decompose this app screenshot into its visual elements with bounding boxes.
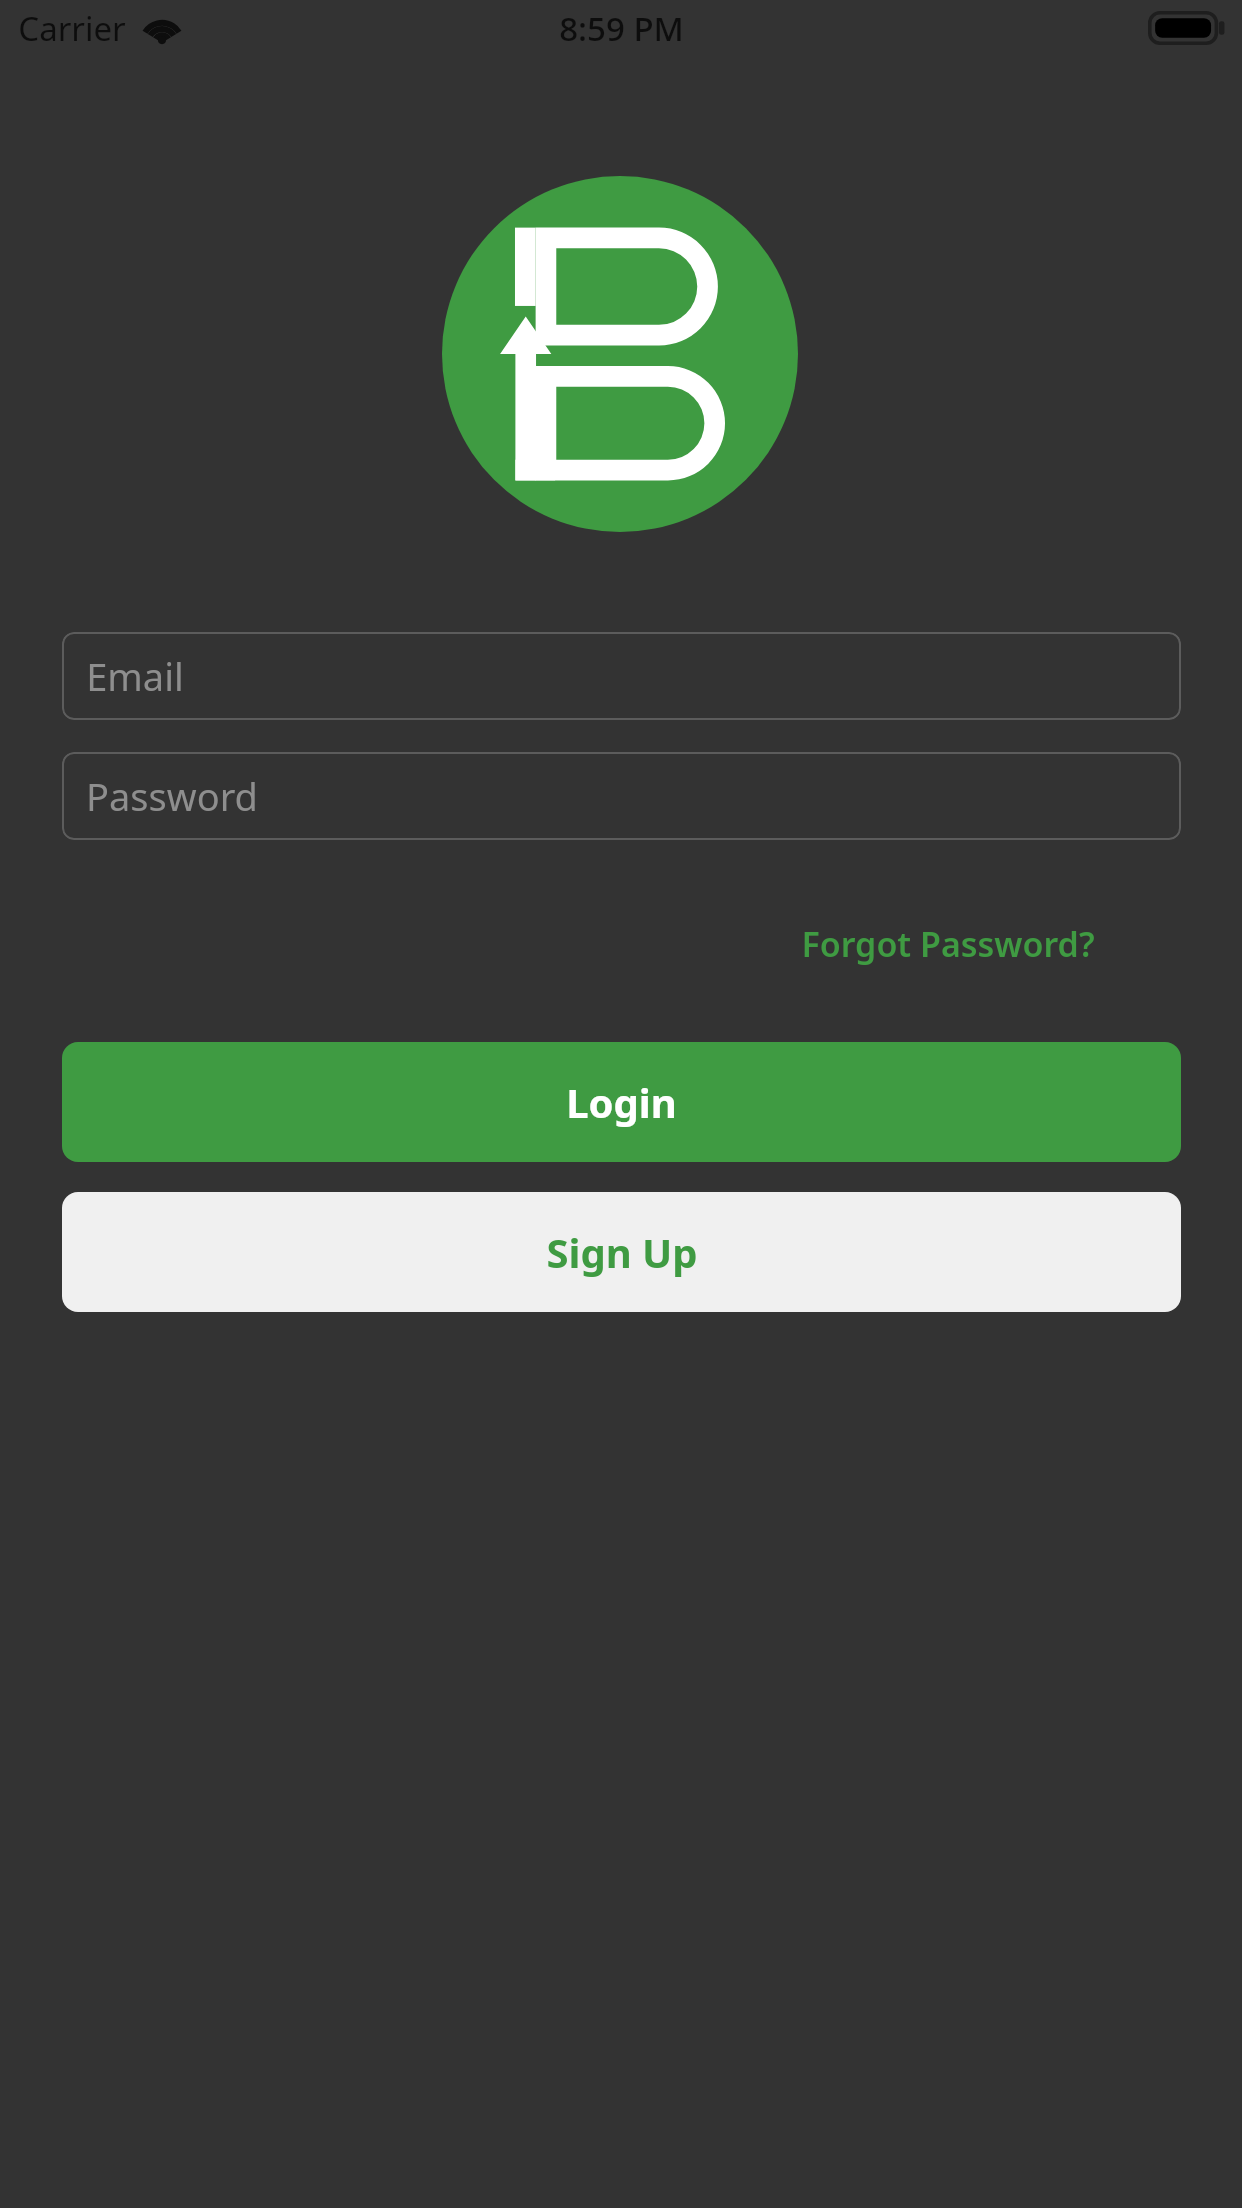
other: App logo <box>442 176 798 532</box>
staticText: Login <box>566 1075 677 1129</box>
button[interactable]: Sign Up <box>62 1192 1181 1312</box>
staticText: Email <box>86 650 184 702</box>
staticText: Password <box>86 770 258 822</box>
button[interactable]: Forgot Password? <box>781 906 1115 982</box>
button[interactable]: Password <box>62 752 1181 840</box>
button[interactable]: Email <box>62 632 1181 720</box>
staticText: 8:59 PM <box>559 6 684 51</box>
staticText: Carrier <box>18 6 126 51</box>
staticText: Forgot Password? <box>801 921 1095 967</box>
staticText: Sign Up <box>546 1225 698 1279</box>
button[interactable]: Login <box>62 1042 1181 1162</box>
